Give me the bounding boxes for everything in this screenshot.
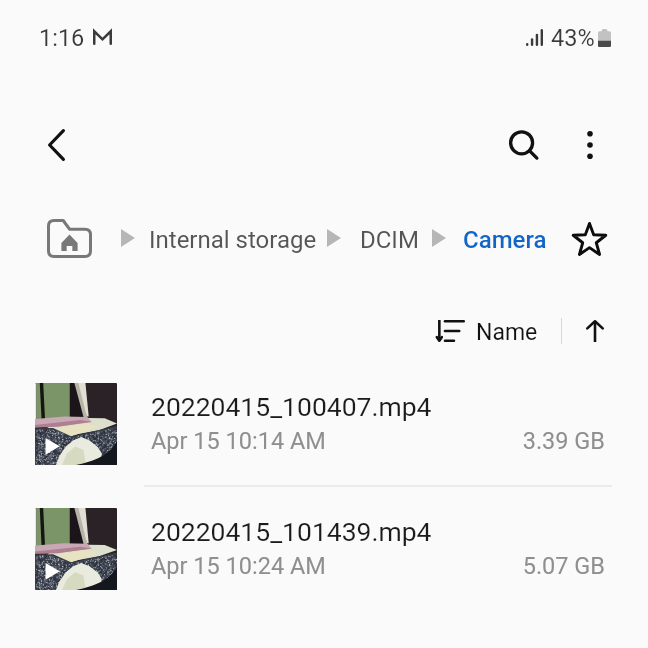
- staticText: DCIM: [360, 226, 419, 254]
- staticText: 1:16: [39, 24, 85, 52]
- button[interactable]: More options: [559, 114, 621, 176]
- staticText: Camera: [463, 226, 547, 254]
- button[interactable]: 20220415_101439.mp4: [0, 487, 648, 612]
- staticText: 20220415_100407.mp4: [151, 391, 432, 422]
- staticText: 3.39 GB: [485, 427, 605, 455]
- staticText: 20220415_101439.mp4: [151, 516, 432, 547]
- button[interactable]: Navigate up: [25, 114, 87, 176]
- staticText: Apr 15 10:24 AM: [151, 552, 326, 580]
- staticText: Apr 15 10:14 AM: [151, 427, 326, 455]
- button[interactable]: Camera: [463, 226, 547, 254]
- button[interactable]: Name: [426, 308, 550, 354]
- staticText: 43%: [551, 24, 595, 52]
- button[interactable]: Sort ascending: [574, 308, 616, 354]
- staticText: Name: [476, 319, 538, 346]
- button[interactable]: 20220415_100407.mp4: [0, 362, 648, 487]
- button[interactable]: Search: [492, 114, 554, 176]
- button[interactable]: Add to favourites: [564, 214, 614, 264]
- staticText: 5.07 GB: [485, 552, 605, 580]
- button[interactable]: Internal storage home: [47, 219, 92, 258]
- button[interactable]: DCIM: [360, 226, 419, 254]
- staticText: Internal storage: [149, 226, 317, 254]
- button[interactable]: Internal storage: [149, 226, 317, 254]
